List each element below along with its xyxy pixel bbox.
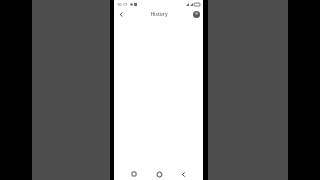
button[interactable]: Home [154, 169, 164, 179]
button[interactable]: Back [116, 9, 126, 19]
staticText: History [150, 11, 168, 18]
button[interactable]: Back [178, 169, 188, 179]
button[interactable]: Profile [192, 10, 201, 19]
button[interactable]: Recent apps [129, 169, 139, 179]
staticText: 10:17 [117, 2, 128, 7]
